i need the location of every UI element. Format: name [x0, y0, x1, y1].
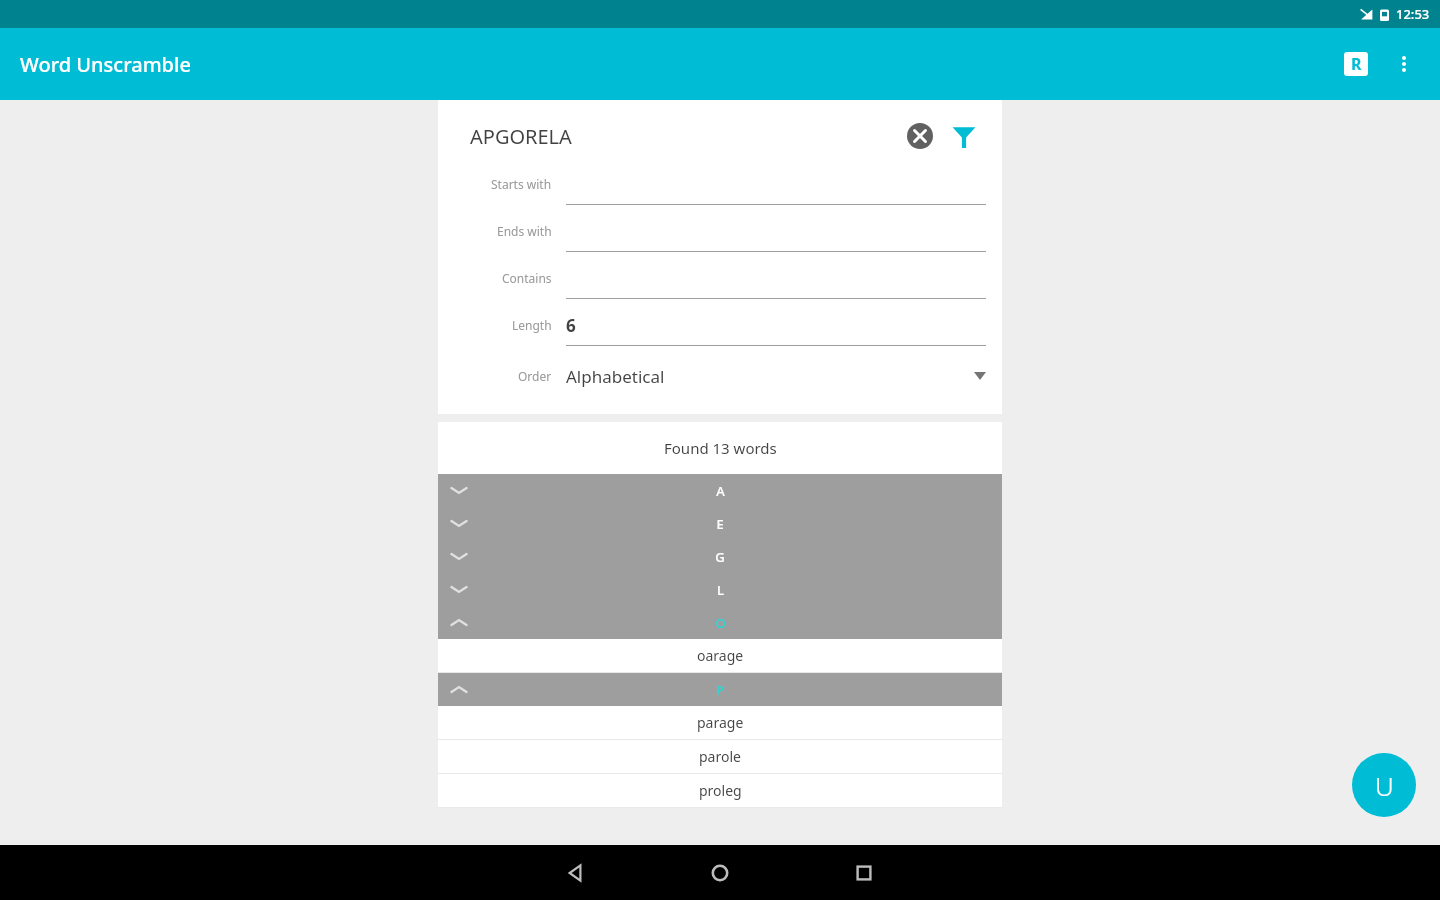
button[interactable]: Clear [898, 114, 942, 158]
button[interactable]: A [438, 474, 1002, 507]
staticText: Starts with [491, 176, 552, 192]
button[interactable]: E [438, 507, 1002, 540]
staticText: APGORELA [470, 123, 572, 150]
staticText: 6 [566, 314, 576, 337]
staticText: Contains [502, 270, 552, 286]
staticText: parole [699, 747, 741, 766]
staticText: E [716, 515, 724, 533]
staticText: G [715, 548, 725, 566]
staticText: A [716, 482, 725, 500]
button[interactable]: 6 [566, 314, 986, 337]
staticText: Word Unscramble [20, 51, 191, 78]
button[interactable]: Alphabetical [566, 354, 986, 398]
staticText: O [715, 614, 726, 632]
staticText: Found 13 words [664, 438, 777, 458]
button[interactable]: parole [438, 740, 1002, 773]
staticText: proleg [699, 781, 742, 800]
staticText: 12:53 [1396, 5, 1430, 23]
staticText: oarage [697, 646, 744, 665]
button[interactable]: More options [1380, 40, 1428, 88]
button[interactable]: Unscramble [1352, 753, 1416, 817]
button[interactable]: Back [540, 845, 612, 900]
staticText: P [716, 681, 724, 699]
staticText: Alphabetical [566, 365, 665, 388]
staticText: Length [512, 317, 552, 333]
staticText: Ends with [497, 223, 552, 239]
staticText: U [1375, 768, 1394, 803]
button[interactable]: Home [684, 845, 756, 900]
button[interactable]: O [438, 606, 1002, 639]
staticText: Order [518, 368, 552, 384]
button[interactable]: Filter [942, 114, 986, 158]
button[interactable]: Recents [828, 845, 900, 900]
button[interactable]: oarage [438, 639, 1002, 672]
staticText: R [1351, 53, 1362, 75]
staticText: parage [697, 713, 744, 732]
button[interactable]: proleg [438, 774, 1002, 807]
staticText: L [717, 581, 724, 599]
button[interactable]: P [438, 673, 1002, 706]
button[interactable]: parage [438, 706, 1002, 739]
button[interactable]: Random word [1332, 40, 1380, 88]
button[interactable]: L [438, 573, 1002, 606]
button[interactable]: G [438, 540, 1002, 573]
